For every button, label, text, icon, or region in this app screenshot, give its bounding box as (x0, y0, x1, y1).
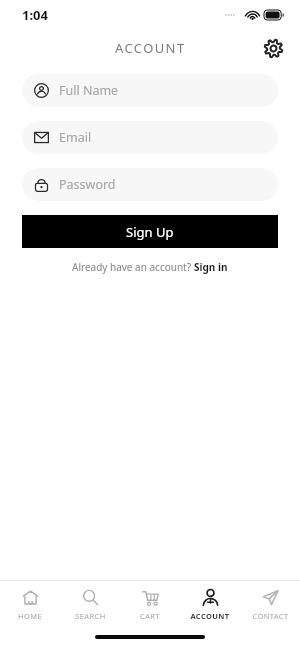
button[interactable]: Full Name (22, 74, 278, 107)
button[interactable]: CART (120, 581, 180, 629)
staticText: ACCOUNT (115, 39, 186, 57)
staticText: Already have an account? (72, 260, 194, 274)
staticText: Email (59, 129, 92, 146)
button[interactable]: CONTACT (240, 581, 300, 629)
staticText: Sign in (194, 260, 228, 274)
button[interactable]: Email (22, 121, 278, 154)
button[interactable]: HOME (0, 581, 60, 629)
button[interactable]: Password (22, 168, 278, 201)
staticText: HOME (18, 611, 42, 621)
button[interactable]: Sign Up (22, 215, 278, 248)
staticText: CONTACT (252, 611, 289, 621)
staticText: Sign Up (126, 223, 174, 241)
staticText: SEARCH (75, 611, 106, 621)
staticText: Password (59, 176, 116, 193)
button[interactable]: Sign in (194, 260, 228, 274)
button[interactable]: SEARCH (60, 581, 120, 629)
staticText: Full Name (59, 82, 119, 99)
button[interactable]: ACCOUNT (180, 581, 240, 629)
staticText: CART (140, 611, 160, 621)
staticText: ACCOUNT (190, 611, 230, 621)
staticText: 1:04 (22, 6, 48, 24)
button[interactable]: Settings (256, 31, 290, 65)
